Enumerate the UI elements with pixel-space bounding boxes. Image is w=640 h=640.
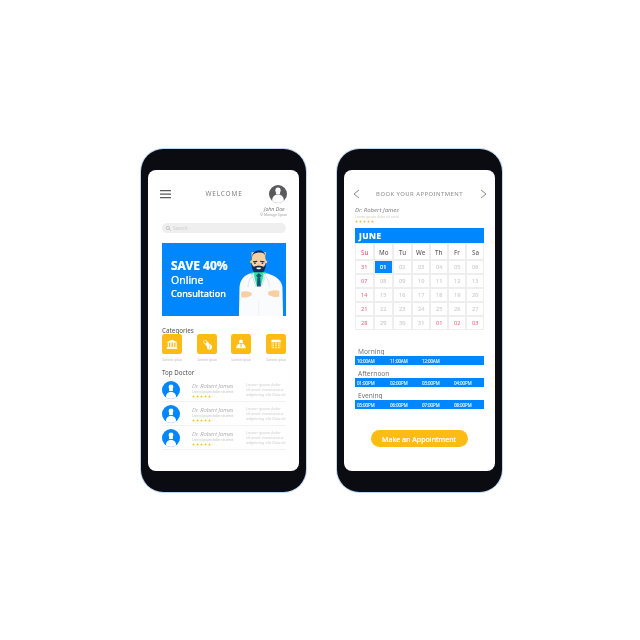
button[interactable]: Lorem ipsum — [197, 334, 217, 362]
button[interactable]: Dr. Robert James — [162, 426, 286, 449]
staticText: 31 — [418, 319, 425, 327]
button[interactable]: 11 — [430, 274, 448, 288]
staticText: 06:00PM — [390, 402, 408, 408]
staticText: 05:00PM — [357, 402, 375, 408]
button[interactable]: 03 — [412, 260, 430, 274]
button[interactable]: 18 — [430, 288, 448, 302]
staticText: 08:00PM — [454, 402, 472, 408]
staticText: 01 — [380, 263, 387, 271]
button[interactable]: 26 — [448, 302, 466, 316]
button[interactable]: 23 — [393, 302, 412, 316]
button[interactable]: 06:00PM — [388, 400, 420, 409]
button[interactable]: 05 — [448, 260, 466, 274]
staticText: 03 — [472, 319, 479, 327]
button[interactable]: 08:00PM — [452, 400, 484, 409]
button[interactable]: Menu — [157, 187, 173, 200]
staticText: 28 — [361, 319, 368, 327]
button[interactable]: 08 — [374, 274, 393, 288]
button[interactable]: 02:00PM — [388, 378, 420, 387]
button[interactable]: 13 — [466, 274, 484, 288]
button[interactable]: Lorem ipsum — [266, 334, 286, 362]
button[interactable]: 17 — [412, 288, 430, 302]
staticText: 02 — [399, 263, 406, 271]
staticText: 07 — [361, 277, 368, 285]
button[interactable]: Dr. Robert James — [162, 402, 286, 425]
staticText: 12:00AM — [422, 358, 440, 364]
staticText: Dr. Robert James — [192, 430, 234, 438]
staticText: Fr — [454, 248, 460, 256]
staticText: 02 — [454, 319, 461, 327]
staticText: 05 — [454, 263, 461, 271]
button[interactable]: Dr. Robert James — [162, 378, 286, 401]
staticText: 03 — [418, 263, 425, 271]
staticText: Lorem ipsum dolor sit amet consectetur a… — [246, 382, 286, 397]
staticText: 01:00PM — [357, 380, 375, 386]
button[interactable]: 01 — [374, 260, 393, 274]
staticText: Lorem ipsum — [197, 357, 217, 362]
button[interactable]: 19 — [448, 288, 466, 302]
staticText: WELCOME — [205, 189, 243, 198]
button[interactable]: 16 — [393, 288, 412, 302]
staticText: Morning — [358, 347, 385, 355]
staticText: Su — [361, 248, 369, 256]
button[interactable]: 20 — [466, 288, 484, 302]
staticText: Manage Space — [264, 212, 288, 217]
button[interactable]: 09 — [393, 274, 412, 288]
button[interactable]: Lorem ipsum — [162, 334, 182, 362]
staticText: Search — [173, 225, 188, 231]
button[interactable]: 02 — [393, 260, 412, 274]
button[interactable]: 06 — [466, 260, 484, 274]
button[interactable]: Lorem ipsum — [231, 334, 251, 362]
button[interactable]: 30 — [393, 316, 412, 330]
button[interactable]: 07 — [355, 274, 374, 288]
staticText: 15 — [380, 291, 387, 299]
button[interactable]: Forward — [477, 188, 489, 200]
button[interactable]: 10 — [412, 274, 430, 288]
button[interactable]: 14 — [355, 288, 374, 302]
staticText: Lorem ipsum dolor sit amet — [192, 414, 234, 418]
staticText: Th — [435, 248, 443, 256]
staticText: Lorem ipsum dolor sit amet consectetur a… — [246, 430, 286, 445]
button[interactable]: 02 — [448, 316, 466, 330]
button[interactable]: 03:00PM — [420, 378, 452, 387]
button[interactable]: 03 — [466, 316, 484, 330]
staticText: Afternoon — [358, 369, 390, 377]
staticText: Lorem ipsum — [266, 357, 286, 362]
staticText: Sa — [472, 248, 479, 256]
button[interactable]: 29 — [374, 316, 393, 330]
button[interactable]: 22 — [374, 302, 393, 316]
button[interactable]: Make an Appointment — [371, 430, 468, 447]
staticText: Lorem ipsum dolor sit amet — [192, 390, 234, 394]
button[interactable]: 31 — [355, 260, 374, 274]
button[interactable]: 01:00PM — [355, 378, 388, 387]
button[interactable]: 04:00PM — [452, 378, 484, 387]
staticText: 12 — [454, 277, 461, 285]
button[interactable]: 25 — [430, 302, 448, 316]
button[interactable]: 10:00AM — [355, 356, 388, 365]
staticText: Dr. Robert James — [192, 406, 234, 414]
button[interactable]: 27 — [466, 302, 484, 316]
staticText: 16 — [399, 291, 406, 299]
button[interactable]: Back — [350, 188, 362, 200]
staticText: Dr. Robert James — [192, 382, 234, 390]
button[interactable]: 05:00PM — [355, 400, 388, 409]
button[interactable]: Profile — [269, 185, 287, 203]
button[interactable]: 04 — [430, 260, 448, 274]
button[interactable]: 15 — [374, 288, 393, 302]
button[interactable]: 24 — [412, 302, 430, 316]
button[interactable]: 07:00PM — [420, 400, 452, 409]
button[interactable]: 21 — [355, 302, 374, 316]
button[interactable]: Search — [162, 223, 286, 233]
staticText: 26 — [454, 305, 461, 313]
staticText: 10:00AM — [357, 358, 375, 364]
button[interactable]: 11:00AM — [388, 356, 420, 365]
staticText: 21 — [361, 305, 368, 313]
button[interactable]: 12 — [448, 274, 466, 288]
button[interactable]: 28 — [355, 316, 374, 330]
staticText: 06 — [472, 263, 479, 271]
staticText: 14 — [361, 291, 368, 299]
button[interactable]: 31 — [412, 316, 430, 330]
button[interactable]: 12:00AM — [420, 356, 452, 365]
staticText: Lorem ipsum — [162, 357, 182, 362]
button[interactable]: 01 — [430, 316, 448, 330]
